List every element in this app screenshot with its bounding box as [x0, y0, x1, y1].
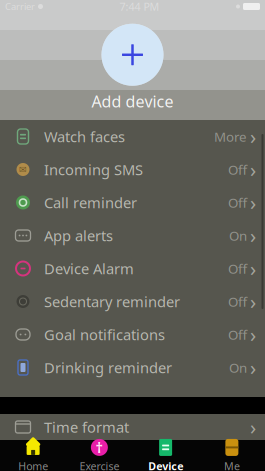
staticText: More — [214, 128, 247, 145]
staticText: On — [229, 359, 247, 376]
staticText: › — [250, 288, 256, 315]
staticText: › — [250, 414, 256, 440]
staticText: Off — [228, 260, 247, 277]
staticText: › — [250, 189, 256, 216]
staticText: Off — [228, 326, 247, 343]
button[interactable]: Device — [132, 440, 199, 471]
staticText: Drinking reminder — [44, 358, 172, 377]
staticText: › — [250, 321, 256, 348]
button[interactable]: Watch faces — [0, 120, 265, 153]
staticText: Call reminder — [44, 193, 137, 212]
staticText: Add device — [91, 91, 173, 112]
button[interactable]: App alerts — [0, 219, 265, 252]
button[interactable]: Add device — [91, 24, 173, 112]
staticText: Goal notifications — [44, 325, 165, 344]
staticText: Carrier — [5, 0, 35, 13]
button[interactable]: Me — [199, 440, 265, 471]
staticText: Off — [228, 293, 247, 310]
staticText: Home — [18, 459, 48, 471]
staticText: › — [250, 354, 256, 381]
staticText: Me — [224, 459, 240, 471]
staticText: ✉ — [19, 164, 27, 175]
button[interactable]: Sedentary reminder — [0, 285, 265, 318]
staticText: Device — [148, 459, 183, 471]
button[interactable]: Time format — [0, 410, 265, 443]
button[interactable]: Device Alarm — [0, 252, 265, 285]
staticText: On — [229, 227, 247, 244]
button[interactable]: ✉ — [0, 153, 265, 186]
staticText: Off — [228, 161, 247, 178]
button[interactable]: Call reminder — [0, 186, 265, 219]
staticText: › — [250, 222, 256, 249]
button[interactable]: † — [66, 440, 132, 471]
staticText: Watch faces — [44, 127, 125, 146]
staticText: › — [250, 123, 256, 150]
staticText: › — [250, 156, 256, 183]
staticText: † — [95, 438, 103, 457]
staticText: App alerts — [44, 226, 113, 245]
staticText: 7:44 PM — [119, 0, 159, 14]
staticText: Incoming SMS — [44, 160, 143, 179]
button[interactable]: Goal notifications — [0, 318, 265, 351]
staticText: Exercise — [79, 459, 119, 471]
button[interactable]: Home — [0, 440, 66, 471]
staticText: Sedentary reminder — [44, 292, 180, 311]
staticText: › — [250, 255, 256, 282]
staticText: Device Alarm — [44, 259, 134, 278]
staticText: Off — [228, 194, 247, 211]
staticText: Time format — [44, 417, 129, 437]
button[interactable]: Drinking reminder — [0, 351, 265, 384]
